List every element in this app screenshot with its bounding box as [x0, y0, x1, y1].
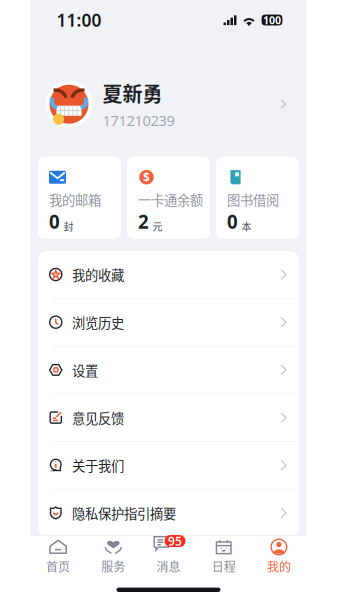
- button[interactable]: 设置: [38, 346, 299, 394]
- staticText: 首页: [46, 557, 70, 575]
- button[interactable]: 我的邮箱: [38, 156, 121, 239]
- staticText: 封: [63, 219, 73, 233]
- staticText: 夏新勇: [102, 78, 162, 107]
- button[interactable]: 隐私保护指引摘要: [38, 489, 299, 536]
- staticText: 0: [227, 209, 238, 234]
- staticText: 100: [263, 13, 281, 27]
- button[interactable]: 首页: [30, 536, 86, 578]
- staticText: 浏览历史: [72, 312, 124, 332]
- staticText: 2: [138, 209, 149, 234]
- staticText: 隐私保护指引摘要: [72, 503, 176, 523]
- staticText: 本: [241, 219, 251, 233]
- staticText: 消息: [156, 557, 180, 575]
- button[interactable]: 图书借阅: [216, 156, 299, 239]
- button[interactable]: 我的收藏: [38, 251, 299, 299]
- button[interactable]: 浏览历史: [38, 299, 299, 346]
- button[interactable]: 关于我们: [38, 442, 299, 489]
- staticText: 171210239: [102, 110, 174, 130]
- staticText: 设置: [72, 360, 98, 379]
- staticText: 我的邮箱: [49, 190, 101, 209]
- button[interactable]: 夏新勇: [30, 41, 306, 156]
- staticText: 我的收藏: [72, 265, 124, 284]
- button[interactable]: 服务: [86, 536, 141, 578]
- staticText: 我的: [267, 557, 291, 575]
- button[interactable]: 日程: [196, 536, 251, 578]
- staticText: 关于我们: [72, 456, 124, 475]
- staticText: 元: [152, 219, 162, 233]
- staticText: 95: [168, 533, 182, 549]
- staticText: 日程: [212, 557, 236, 575]
- button[interactable]: 我的: [251, 536, 306, 578]
- button[interactable]: 95: [141, 536, 196, 578]
- staticText: $: [143, 169, 150, 185]
- staticText: 一卡通余额: [138, 190, 203, 209]
- button[interactable]: $: [127, 156, 210, 239]
- staticText: 0: [49, 209, 60, 234]
- staticText: 服务: [101, 557, 125, 575]
- staticText: 意见反馈: [72, 408, 124, 427]
- staticText: 11:00: [56, 8, 101, 31]
- button[interactable]: 意见反馈: [38, 394, 299, 442]
- staticText: 图书借阅: [227, 190, 279, 209]
